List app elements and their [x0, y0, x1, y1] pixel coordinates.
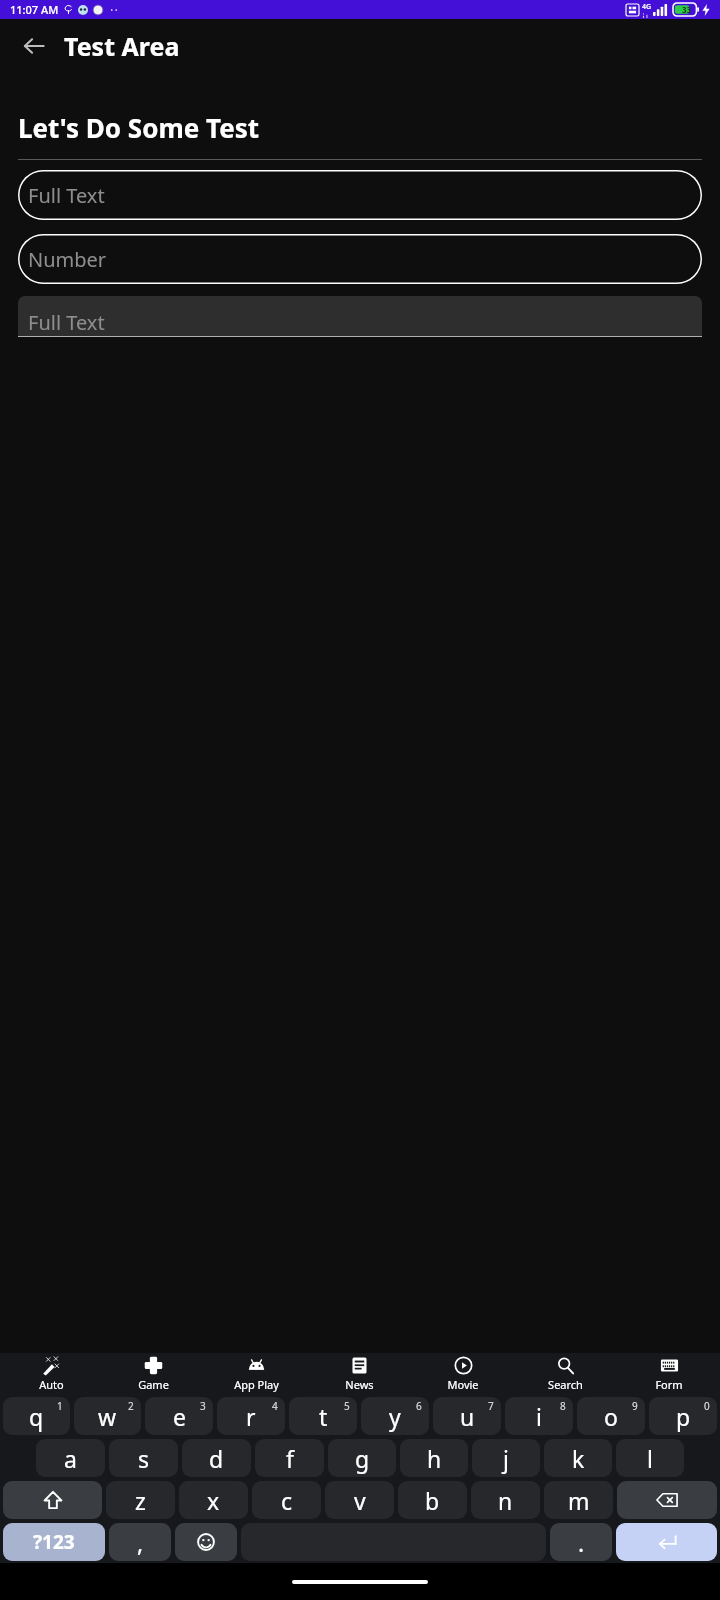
button[interactable]: r: [217, 1397, 285, 1435]
button[interactable]: Movie: [411, 1353, 514, 1395]
staticText: w: [98, 1401, 117, 1432]
staticText: Let's Do Some Test: [18, 110, 260, 145]
button[interactable]: a: [36, 1439, 105, 1477]
button[interactable]: x: [179, 1481, 248, 1519]
staticText: Number: [28, 246, 107, 273]
staticText: Test Area: [64, 29, 180, 63]
staticText: d: [209, 1443, 224, 1474]
button[interactable]: News: [308, 1353, 411, 1395]
staticText: .: [578, 1527, 585, 1558]
staticText: 1: [57, 1399, 63, 1413]
staticText: 9: [632, 1399, 638, 1413]
staticText: k: [572, 1443, 585, 1474]
button[interactable]: k: [544, 1439, 612, 1477]
button[interactable]: g: [328, 1439, 396, 1477]
staticText: e: [173, 1401, 186, 1432]
button[interactable]: Full Text: [18, 296, 702, 336]
staticText: q: [29, 1401, 44, 1432]
button[interactable]: w: [74, 1397, 141, 1435]
staticText: 4: [272, 1399, 278, 1413]
button[interactable]: Emoji: [175, 1523, 237, 1561]
button[interactable]: b: [398, 1481, 467, 1519]
staticText: z: [135, 1485, 146, 1516]
button[interactable]: l: [616, 1439, 684, 1477]
button[interactable]: Full Text: [18, 170, 702, 220]
button[interactable]: z: [106, 1481, 175, 1519]
button[interactable]: Search: [514, 1353, 617, 1395]
button[interactable]: Auto: [0, 1353, 102, 1395]
staticText: Search: [548, 1377, 583, 1392]
staticText: Auto: [39, 1377, 64, 1392]
staticText: v: [354, 1485, 366, 1516]
staticText: r: [246, 1401, 256, 1432]
button[interactable]: u: [433, 1397, 501, 1435]
staticText: i: [536, 1401, 542, 1432]
staticText: 0: [704, 1399, 710, 1413]
button[interactable]: t: [289, 1397, 357, 1435]
staticText: Full Text: [28, 182, 105, 209]
button[interactable]: n: [471, 1481, 540, 1519]
button[interactable]: c: [252, 1481, 321, 1519]
button[interactable]: ?123: [3, 1523, 105, 1561]
button[interactable]: App Play: [205, 1353, 308, 1395]
button[interactable]: f: [255, 1439, 324, 1477]
staticText: 4G: [642, 2, 652, 12]
staticText: 5: [344, 1399, 350, 1413]
button[interactable]: Form: [617, 1353, 720, 1395]
staticText: g: [355, 1443, 370, 1474]
staticText: a: [64, 1443, 77, 1474]
button[interactable]: Enter: [616, 1523, 717, 1561]
button[interactable]: o: [577, 1397, 645, 1435]
button[interactable]: Backspace: [617, 1481, 717, 1519]
staticText: 3: [200, 1399, 206, 1413]
button[interactable]: .: [550, 1523, 612, 1561]
staticText: News: [345, 1377, 374, 1392]
staticText: o: [604, 1401, 618, 1432]
button[interactable]: d: [182, 1439, 251, 1477]
staticText: b: [425, 1485, 440, 1516]
button[interactable]: ,: [109, 1523, 171, 1561]
staticText: l: [647, 1443, 653, 1474]
staticText: 8: [560, 1399, 566, 1413]
staticText: c: [281, 1485, 293, 1516]
staticText: ?123: [33, 1529, 75, 1555]
button[interactable]: e: [145, 1397, 213, 1435]
staticText: 7: [488, 1399, 494, 1413]
button[interactable]: m: [544, 1481, 613, 1519]
button[interactable]: h: [400, 1439, 468, 1477]
button[interactable]: q: [3, 1397, 70, 1435]
staticText: 6: [416, 1399, 422, 1413]
button[interactable]: Game: [102, 1353, 205, 1395]
button[interactable]: s: [109, 1439, 178, 1477]
staticText: 11:07 AM: [10, 2, 59, 17]
button[interactable]: y: [361, 1397, 429, 1435]
button[interactable]: j: [472, 1439, 540, 1477]
staticText: Full Text: [28, 309, 105, 336]
staticText: Form: [655, 1377, 683, 1392]
staticText: Movie: [447, 1377, 479, 1392]
staticText: y: [389, 1401, 401, 1432]
button[interactable]: i: [505, 1397, 573, 1435]
staticText: Game: [138, 1377, 169, 1392]
button[interactable]: Back: [10, 22, 58, 70]
staticText: s: [138, 1443, 150, 1474]
staticText: x: [207, 1485, 220, 1516]
staticText: t: [319, 1401, 328, 1432]
button[interactable]: Shift: [3, 1481, 102, 1519]
staticText: u: [460, 1401, 475, 1432]
button[interactable]: v: [325, 1481, 394, 1519]
staticText: App Play: [234, 1377, 279, 1392]
staticText: f: [286, 1443, 294, 1474]
button[interactable]: Number: [18, 234, 702, 284]
button[interactable]: p: [649, 1397, 717, 1435]
staticText: p: [676, 1401, 691, 1432]
staticText: j: [503, 1443, 509, 1474]
staticText: 33: [682, 4, 692, 15]
staticText: n: [498, 1485, 513, 1516]
staticText: h: [427, 1443, 442, 1474]
staticText: ,: [137, 1527, 144, 1558]
staticText: m: [568, 1485, 590, 1516]
staticText: 2: [128, 1399, 134, 1413]
